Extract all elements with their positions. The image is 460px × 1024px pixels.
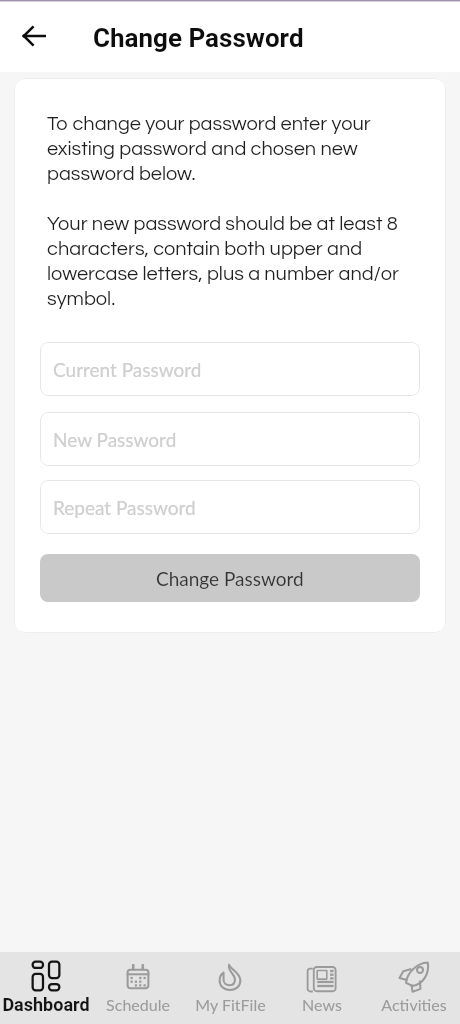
button[interactable]: Schedule [92, 952, 184, 1024]
button[interactable]: Change Password [40, 554, 420, 602]
staticText: Activities [381, 995, 447, 1014]
staticText: Repeat Password [53, 496, 196, 519]
button[interactable]: My FitFile [184, 952, 276, 1024]
staticText: Schedule [106, 995, 170, 1014]
staticText: New Password [53, 428, 177, 451]
button[interactable]: Back [12, 14, 56, 58]
button[interactable]: New Password [40, 412, 420, 466]
staticText: News [302, 995, 342, 1014]
button[interactable]: Activities [368, 952, 460, 1024]
button[interactable]: Dashboard [0, 952, 92, 1024]
staticText: To change your password enter your exist… [47, 114, 420, 309]
button[interactable]: Repeat Password [40, 480, 420, 534]
staticText: Change Password [156, 567, 304, 590]
button[interactable]: Current Password [40, 342, 420, 396]
staticText: Change Password [93, 23, 304, 53]
staticText: Current Password [53, 358, 202, 381]
staticText: Dashboard [2, 994, 90, 1015]
button[interactable]: News [276, 952, 368, 1024]
staticText: My FitFile [195, 995, 266, 1014]
